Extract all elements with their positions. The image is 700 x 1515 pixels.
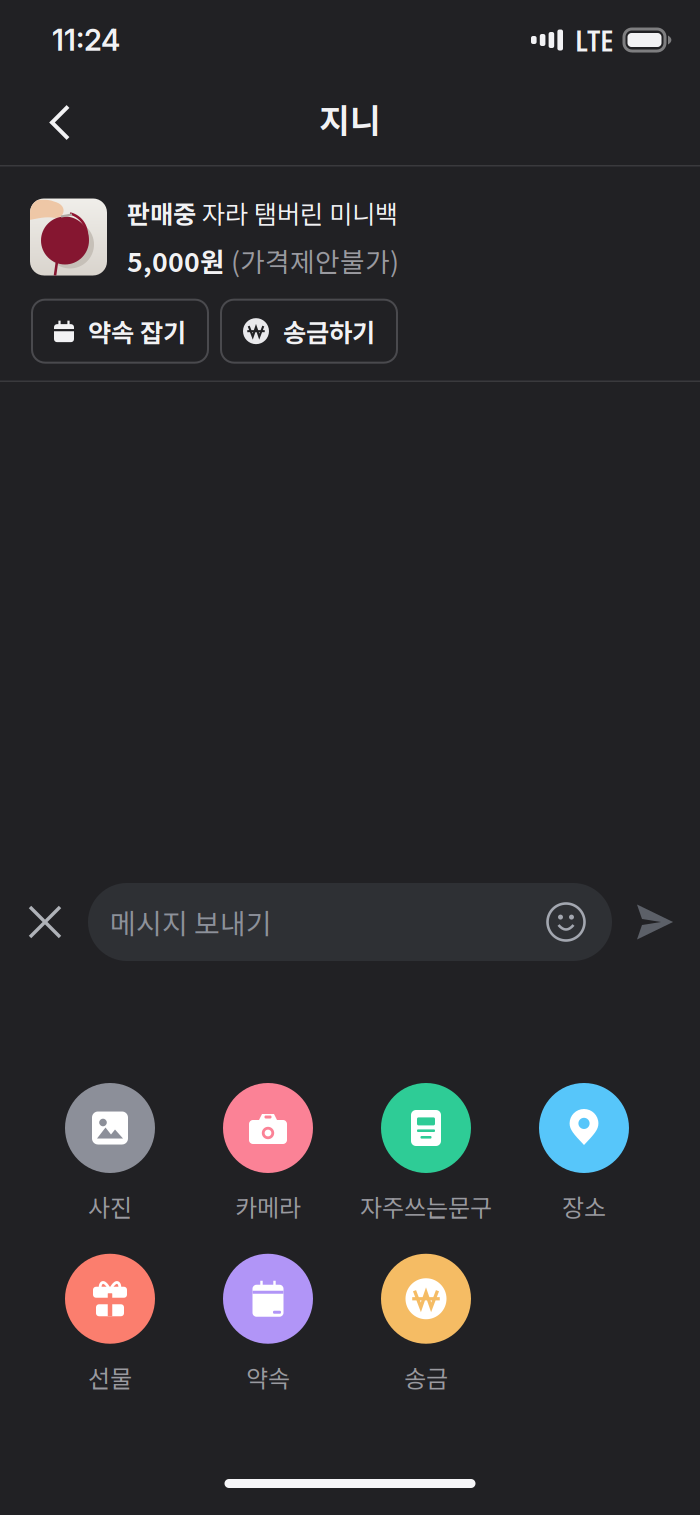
button[interactable]: 송금하기 [221, 300, 397, 363]
staticText: 5,000원 [127, 241, 225, 280]
button[interactable]: Close [16, 893, 74, 951]
staticText: 카메라 [235, 1189, 301, 1224]
button[interactable]: 약속 [189, 1254, 347, 1395]
button[interactable]: Emoji [538, 894, 594, 950]
staticText: 사진 [88, 1189, 132, 1224]
staticText: 장소 [562, 1189, 606, 1224]
button[interactable]: Back [29, 91, 91, 153]
staticText: 약속 [246, 1360, 290, 1395]
staticText: 송금 [404, 1360, 448, 1395]
button[interactable]: 장소 [505, 1083, 663, 1224]
button[interactable]: 자주쓰는문구 [347, 1083, 505, 1224]
button[interactable]: 선물 [31, 1254, 189, 1395]
staticText: 송금하기 [283, 313, 375, 349]
staticText: LTE [575, 20, 614, 60]
button[interactable]: Send [624, 891, 686, 953]
button[interactable]: 약속 잡기 [32, 300, 208, 363]
staticText: 선물 [88, 1360, 132, 1395]
staticText: (가격제안불가) [225, 241, 399, 280]
staticText: 메시지 보내기 [110, 902, 272, 942]
button[interactable]: 사진 [31, 1083, 189, 1224]
staticText: 11:24 [52, 22, 120, 58]
staticText: 자주쓰는문구 [360, 1189, 492, 1224]
button[interactable]: 카메라 [189, 1083, 347, 1224]
staticText: 약속 잡기 [88, 313, 186, 349]
staticText: 지니 [319, 94, 381, 143]
staticText: 자라 탬버린 미니백 [196, 194, 398, 231]
staticText: 판매중 [127, 194, 196, 231]
button[interactable]: 송금 [347, 1254, 505, 1395]
